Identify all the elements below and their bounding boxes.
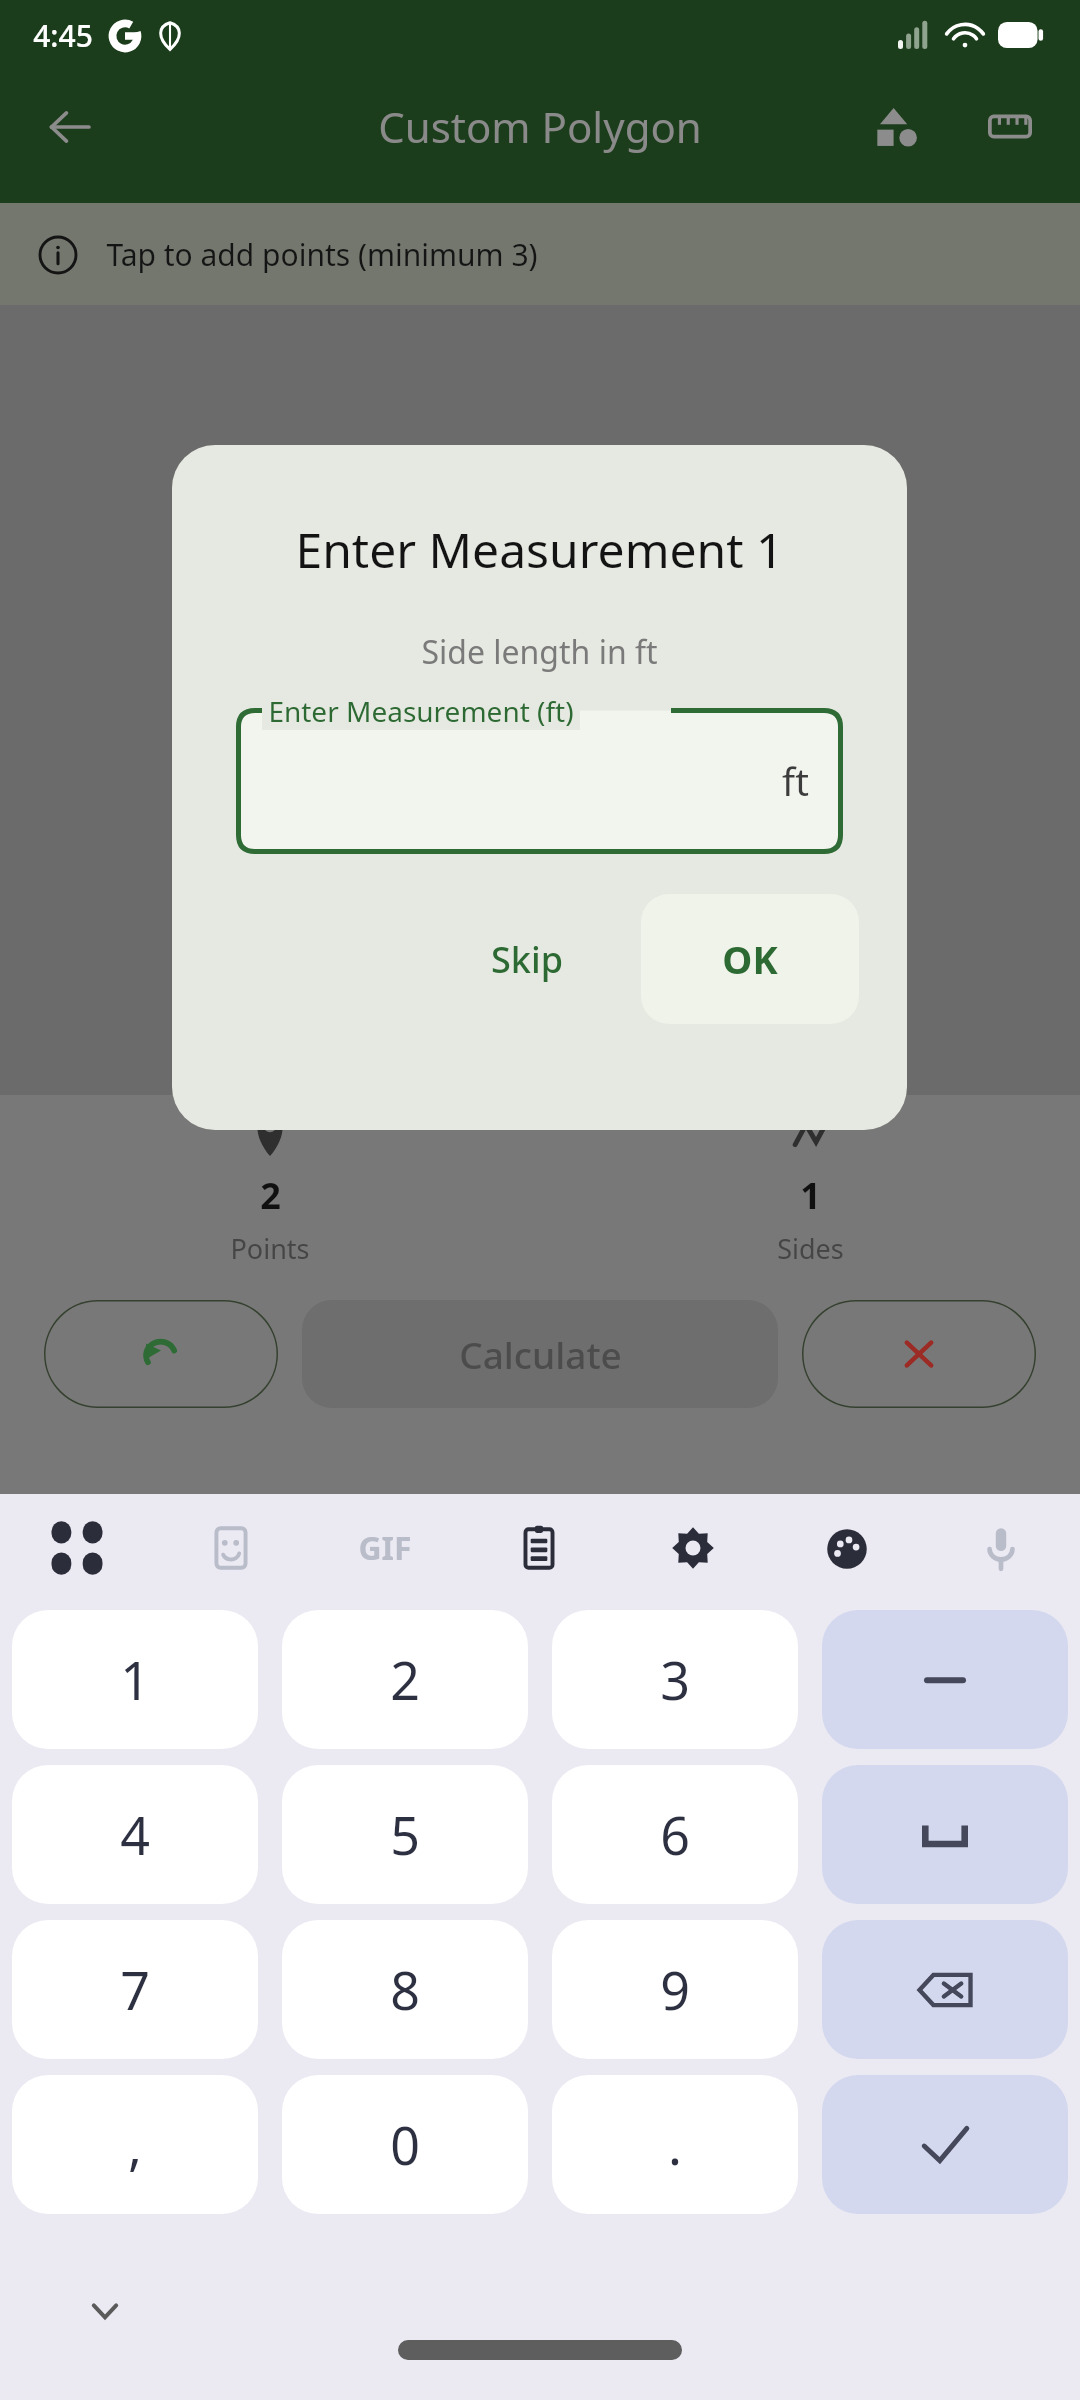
staticText: Calculate	[459, 1329, 622, 1379]
staticText: Tap to add points (minimum 3)	[106, 234, 538, 275]
button[interactable]: 6	[552, 1765, 798, 1904]
staticText: Points	[230, 1230, 310, 1267]
button[interactable]: Minus	[822, 1610, 1068, 1749]
staticText: 1	[120, 1644, 150, 1715]
button[interactable]: Voice input	[924, 1494, 1078, 1602]
staticText: 3	[660, 1644, 690, 1715]
staticText: 2	[260, 1171, 281, 1220]
staticText: 2	[390, 1644, 420, 1715]
staticText: Sides	[777, 1230, 844, 1267]
button[interactable]: 9	[552, 1920, 798, 2059]
staticText: Skip	[491, 935, 563, 984]
button[interactable]: Stickers	[154, 1494, 308, 1602]
staticText: Side length in ft	[421, 630, 658, 674]
staticText: 7	[120, 1954, 150, 2025]
button[interactable]: Backspace	[822, 1920, 1068, 2059]
staticText: 0	[390, 2109, 420, 2180]
button[interactable]: 1	[12, 1610, 258, 1749]
button[interactable]: Apps	[0, 1494, 154, 1602]
button[interactable]: OK	[641, 894, 859, 1024]
button[interactable]: Settings	[616, 1494, 770, 1602]
staticText: ft	[782, 755, 809, 807]
staticText: 6	[660, 1799, 690, 1870]
button[interactable]: Hide keyboard	[70, 2276, 140, 2346]
button[interactable]: Space	[822, 1765, 1068, 1904]
button[interactable]: Units	[968, 85, 1052, 169]
button[interactable]: Calculate	[302, 1300, 778, 1408]
button[interactable]: Enter	[822, 2075, 1068, 2214]
button[interactable]: Enter Measurement (ft)	[236, 708, 843, 854]
staticText: ,	[128, 2109, 142, 2180]
staticText: .	[668, 2109, 682, 2180]
staticText: 8	[390, 1954, 420, 2025]
button[interactable]: ,	[12, 2075, 258, 2214]
button[interactable]: Back	[28, 85, 112, 169]
button[interactable]: 4	[12, 1765, 258, 1904]
button[interactable]: Undo	[44, 1300, 278, 1408]
button[interactable]: 3	[552, 1610, 798, 1749]
staticText: 5	[390, 1799, 420, 1870]
staticText: Enter Measurement (ft)	[268, 692, 574, 730]
button[interactable]: Clear	[802, 1300, 1036, 1408]
button[interactable]: 5	[282, 1765, 528, 1904]
staticText: OK	[722, 933, 778, 985]
button[interactable]: Skip	[457, 911, 597, 1008]
button[interactable]: GIF	[308, 1494, 462, 1602]
staticText: 4	[120, 1799, 150, 1870]
button[interactable]: Themes	[770, 1494, 924, 1602]
button[interactable]: .	[552, 2075, 798, 2214]
button[interactable]: 2	[282, 1610, 528, 1749]
button[interactable]: 8	[282, 1920, 528, 2059]
staticText: 9	[660, 1954, 690, 2025]
button[interactable]: 0	[282, 2075, 528, 2214]
staticText: GIF	[358, 1526, 412, 1570]
staticText: Custom Polygon	[378, 98, 702, 155]
staticText: 1	[800, 1171, 821, 1220]
staticText: Enter Measurement 1	[295, 517, 784, 582]
button[interactable]: 7	[12, 1920, 258, 2059]
button[interactable]: Shapes	[856, 85, 940, 169]
button[interactable]: Clipboard	[462, 1494, 616, 1602]
staticText: 4:45	[33, 15, 93, 56]
